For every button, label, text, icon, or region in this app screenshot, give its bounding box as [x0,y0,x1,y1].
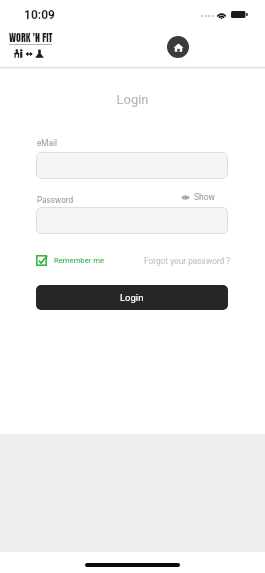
staticText: Show [194,192,215,202]
staticText: Login [0,92,265,107]
staticText: 10:09 [24,8,55,22]
staticText: Remember me [54,256,105,265]
button[interactable]: Show [181,192,215,202]
button[interactable]: Home [167,36,189,58]
staticText: eMail [37,138,57,148]
button[interactable]: Remember me [36,255,105,266]
staticText: WORK 'N FIT [9,30,53,45]
staticText: Login [120,292,144,303]
button[interactable]: Forgot your password ? [144,256,231,266]
staticText: Password [37,195,74,205]
button[interactable]: Login [36,285,228,310]
button[interactable]: Password input [36,207,228,234]
button[interactable]: eMail input [36,152,228,179]
